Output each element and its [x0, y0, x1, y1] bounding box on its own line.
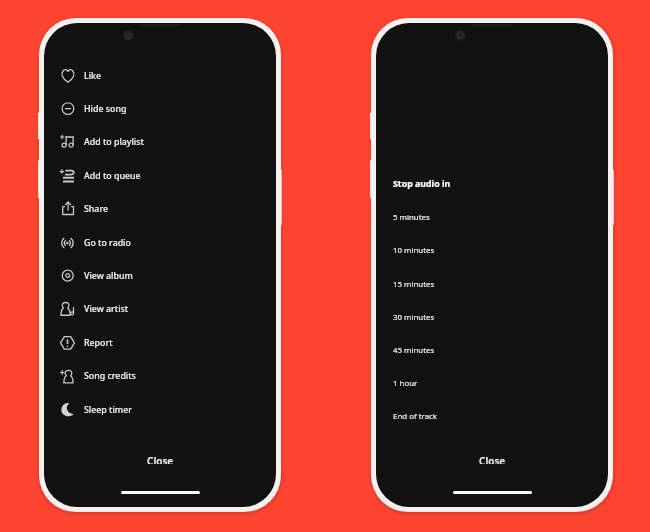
button[interactable]: 5 minutes: [376, 201, 608, 234]
staticText: Hide song: [84, 103, 127, 115]
button[interactable]: 30 minutes: [376, 301, 608, 334]
staticText: 10 minutes: [393, 245, 435, 256]
button[interactable]: 1 hour: [376, 367, 608, 400]
button[interactable]: Close: [459, 448, 526, 470]
staticText: Report: [84, 337, 113, 349]
button[interactable]: 45 minutes: [376, 334, 608, 367]
button[interactable]: View artist: [44, 292, 276, 325]
staticText: Go to radio: [84, 237, 131, 249]
staticText: Close: [147, 454, 174, 464]
staticText: Song credits: [84, 370, 136, 382]
button[interactable]: View album: [44, 259, 276, 292]
button[interactable]: Add to queue: [44, 159, 276, 192]
button[interactable]: Report: [44, 326, 276, 359]
button[interactable]: Like: [44, 59, 276, 92]
button[interactable]: Sleep timer: [44, 393, 276, 426]
staticText: View album: [84, 270, 133, 282]
staticText: End of track: [393, 411, 438, 422]
staticText: Share: [84, 203, 108, 215]
button[interactable]: Share: [44, 192, 276, 225]
staticText: Like: [84, 70, 102, 82]
button[interactable]: Add to playlist: [44, 125, 276, 158]
button[interactable]: 10 minutes: [376, 234, 608, 267]
staticText: Stop audio in: [393, 178, 451, 190]
staticText: Add to queue: [84, 170, 141, 182]
button[interactable]: Song credits: [44, 359, 276, 392]
staticText: 45 minutes: [393, 345, 435, 356]
button[interactable]: Hide song: [44, 92, 276, 125]
staticText: Sleep timer: [84, 404, 132, 416]
button[interactable]: Close: [127, 448, 194, 470]
button[interactable]: 15 minutes: [376, 268, 608, 301]
button[interactable]: Go to radio: [44, 226, 276, 259]
staticText: 5 minutes: [393, 212, 430, 223]
staticText: 15 minutes: [393, 279, 435, 290]
staticText: Add to playlist: [84, 136, 144, 148]
staticText: 30 minutes: [393, 312, 435, 323]
button[interactable]: End of track: [376, 400, 608, 433]
staticText: Close: [479, 454, 506, 464]
staticText: 1 hour: [393, 378, 418, 389]
staticText: View artist: [84, 303, 129, 315]
